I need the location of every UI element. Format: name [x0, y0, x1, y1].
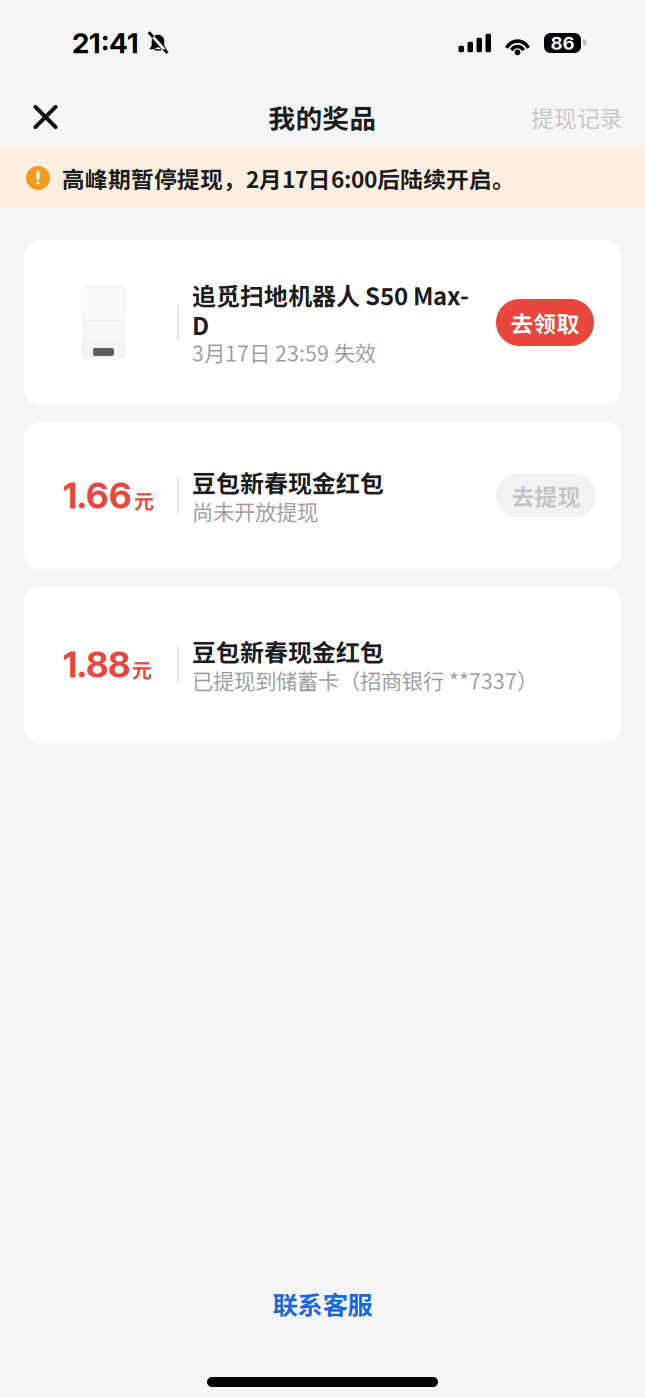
staticText: 21:41 — [72, 26, 139, 60]
staticText: 元 — [132, 654, 152, 683]
staticText: 提现记录 — [531, 101, 623, 133]
button[interactable]: Close — [33, 93, 81, 141]
staticText: 元 — [134, 485, 154, 514]
staticText: 1.88 — [63, 643, 130, 686]
staticText: 去领取 — [510, 306, 579, 339]
staticText: 1.66 — [63, 474, 132, 517]
staticText: 追觅扫地机器人 S50 Max-D — [192, 277, 469, 342]
button[interactable]: 联系客服 — [248, 1273, 396, 1334]
staticText: 尚未开放提现 — [192, 495, 318, 526]
staticText: 豆包新春现金红包 — [192, 465, 384, 499]
button[interactable]: 提现记录 — [531, 93, 623, 141]
staticText: 去提现 — [511, 479, 580, 512]
button[interactable]: 去领取 — [496, 299, 594, 346]
staticText: 高峰期暂停提现，2月17日6:00后陆续开启。 — [62, 162, 515, 194]
staticText: 联系客服 — [272, 1285, 372, 1322]
button[interactable]: 去提现 — [496, 474, 596, 517]
staticText: 我的奖品 — [268, 98, 376, 136]
staticText: 3月17日 23:59 失效 — [192, 337, 376, 368]
staticText: 86 — [550, 32, 574, 54]
staticText: 已提现到储蓄卡（招商银行 **7337） — [192, 664, 538, 695]
staticText: 豆包新春现金红包 — [192, 634, 384, 668]
